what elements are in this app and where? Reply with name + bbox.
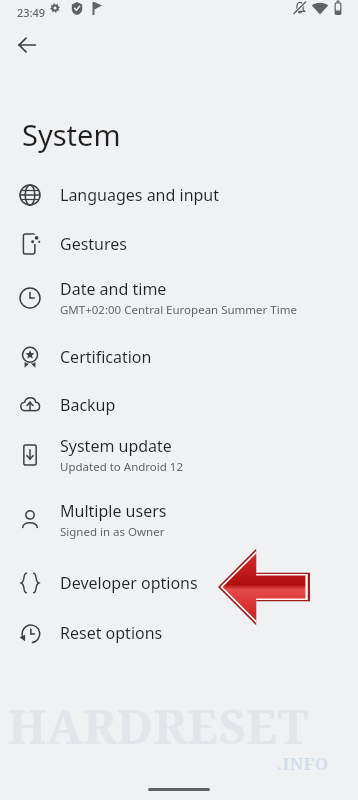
button[interactable]: Certification	[0, 333, 358, 381]
staticText: 23:49	[17, 5, 46, 20]
staticText: Backup	[60, 394, 116, 416]
staticText: HARDRESET	[8, 694, 358, 758]
staticText: Multiple users	[60, 500, 167, 522]
staticText: System	[22, 115, 121, 154]
button[interactable]: Multiple users	[0, 491, 358, 549]
button[interactable]: Date and time	[0, 269, 358, 327]
staticText: Signed in as Owner	[60, 524, 165, 540]
button[interactable]: Back	[5, 23, 49, 67]
staticText: Gestures	[60, 233, 127, 255]
staticText: Updated to Android 12	[60, 459, 183, 475]
staticText: GMT+02:00 Central European Summer Time	[60, 302, 297, 318]
button[interactable]: Languages and input	[0, 171, 358, 219]
staticText: .INFO	[277, 752, 329, 775]
button[interactable]: Developer options	[0, 559, 358, 607]
staticText: System update	[60, 435, 172, 457]
staticText: Languages and input	[60, 184, 220, 206]
button[interactable]: System update	[0, 426, 358, 484]
staticText: Date and time	[60, 278, 167, 300]
staticText: Reset options	[60, 622, 163, 644]
button[interactable]: Gestures	[0, 220, 358, 268]
button[interactable]: Backup	[0, 381, 358, 429]
staticText: Certification	[60, 346, 152, 368]
staticText: Developer options	[60, 572, 198, 594]
button[interactable]: Reset options	[0, 609, 358, 657]
